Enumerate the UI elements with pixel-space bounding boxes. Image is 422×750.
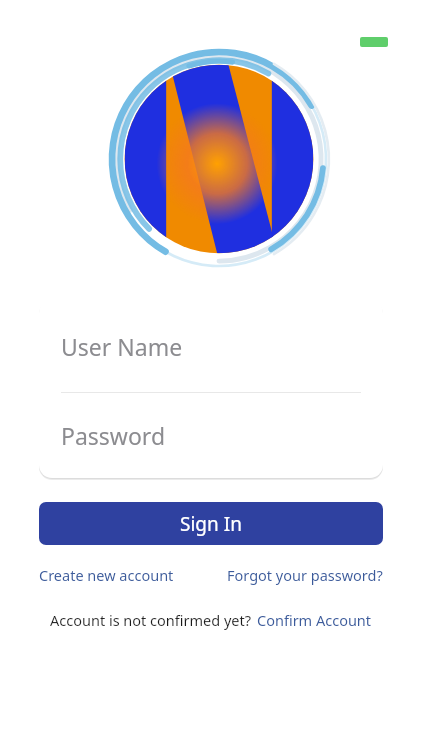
- staticText: Account is not confirmed yet?: [50, 610, 252, 630]
- button[interactable]: Forgot your password?: [227, 561, 383, 589]
- button[interactable]: Confirm Account: [252, 606, 372, 634]
- staticText: Confirm Account: [257, 610, 372, 630]
- staticText: Sign In: [180, 511, 242, 537]
- button[interactable]: Sign In: [39, 502, 383, 545]
- button[interactable]: Password: [39, 393, 383, 478]
- staticText: Forgot your password?: [227, 565, 383, 585]
- button[interactable]: Status badge: [360, 37, 388, 47]
- other: App logo: [108, 48, 330, 270]
- button[interactable]: Create new account: [39, 561, 174, 589]
- staticText: Create new account: [39, 565, 174, 585]
- staticText: User Name: [61, 331, 183, 362]
- staticText: Password: [61, 420, 166, 451]
- button[interactable]: User Name: [39, 300, 383, 392]
